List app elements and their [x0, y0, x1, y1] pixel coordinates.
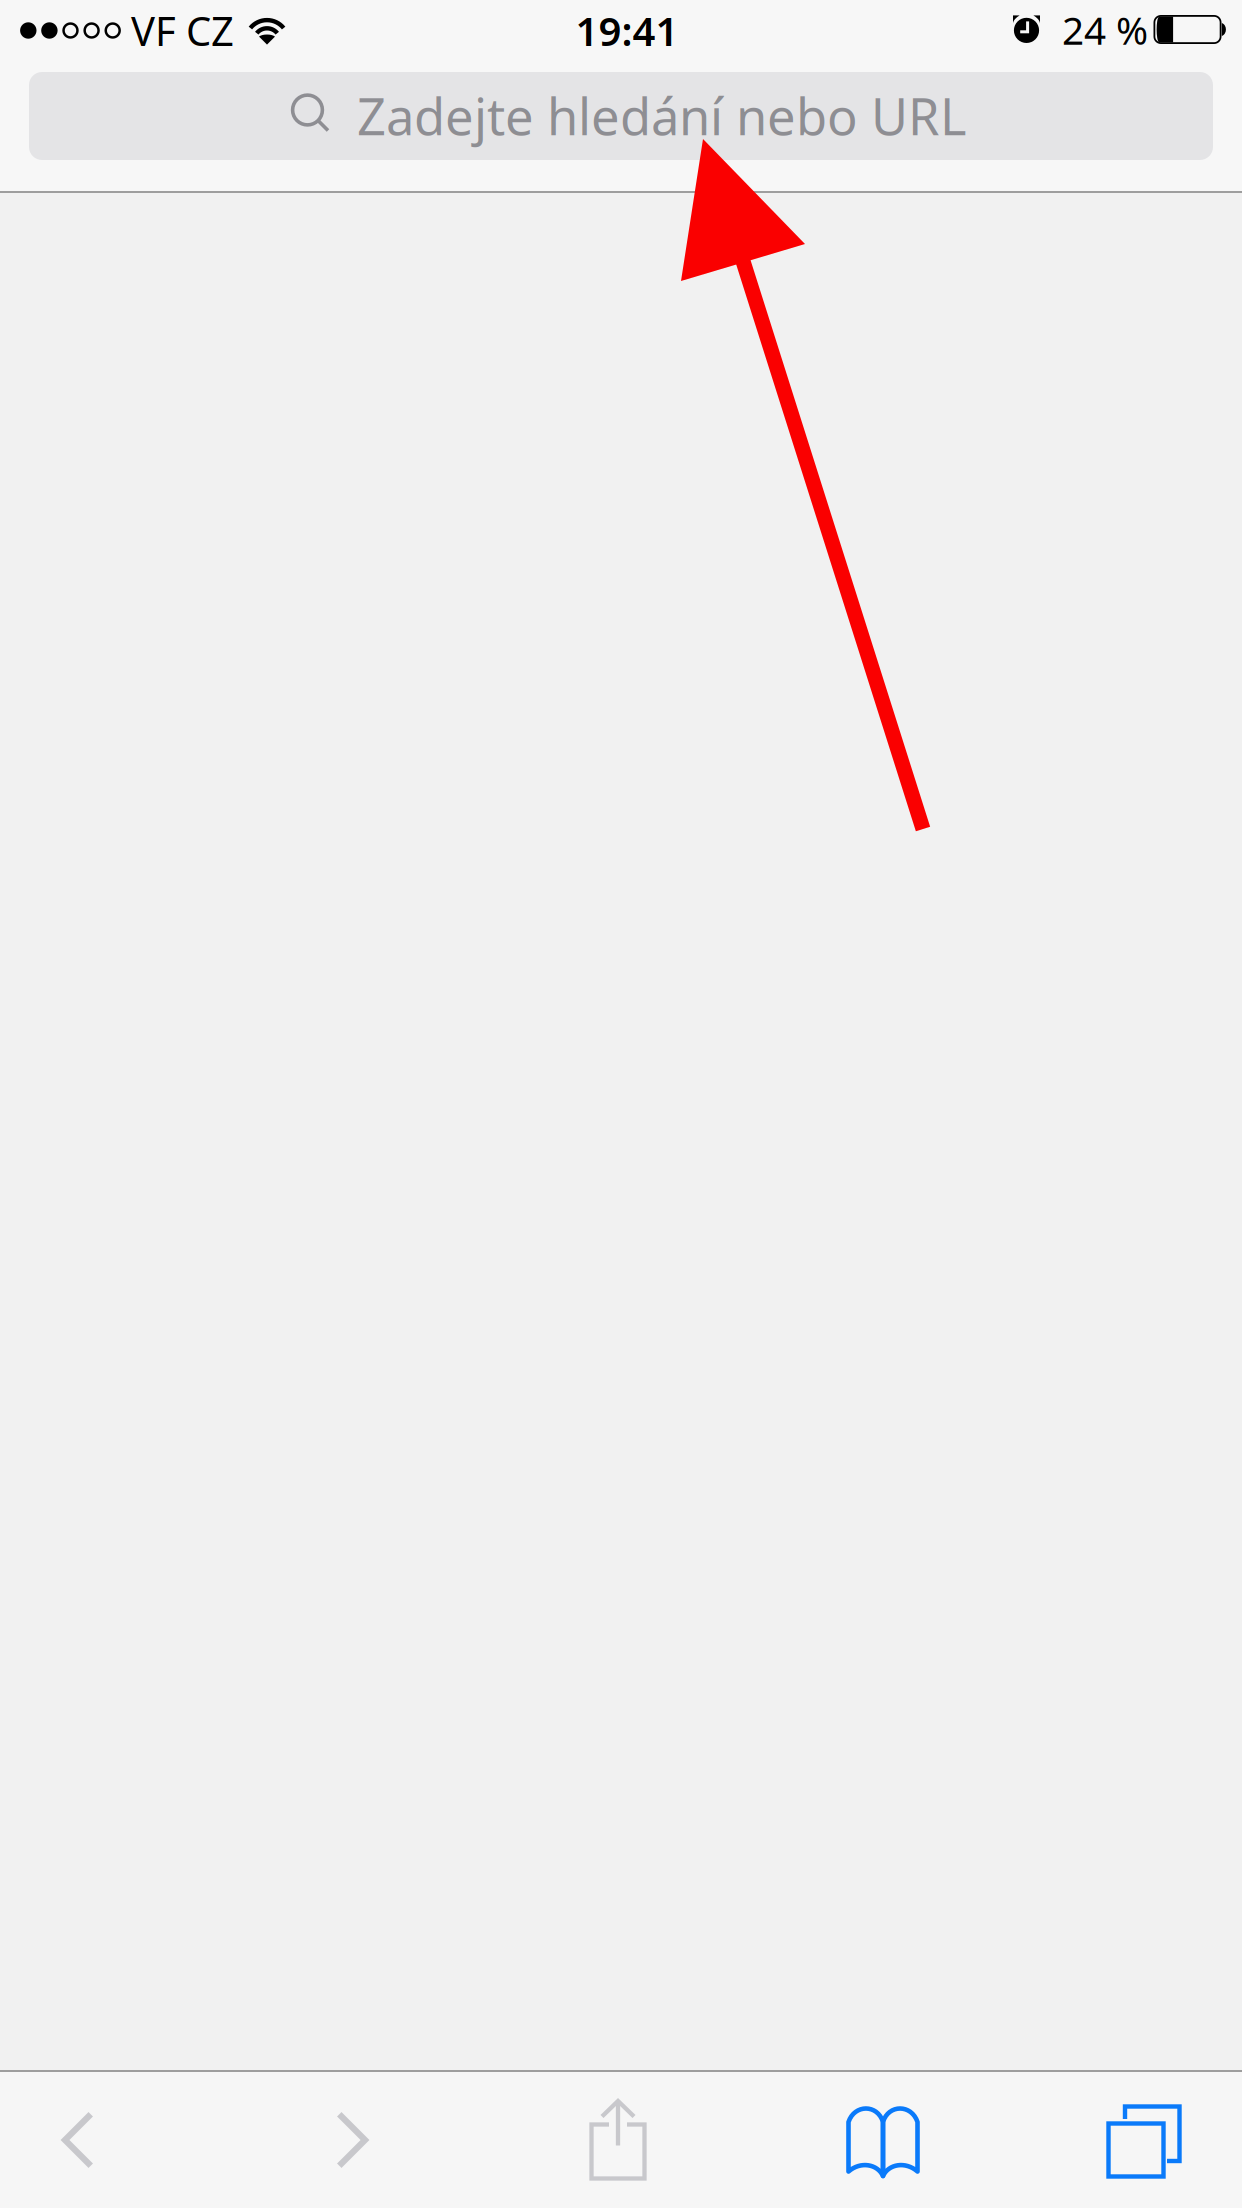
- button[interactable]: Bookmarks: [823, 2077, 943, 2208]
- staticText: Zadejte hledání nebo URL: [357, 82, 967, 149]
- button[interactable]: Forward: [293, 2072, 413, 2208]
- staticText: 24 %: [1062, 4, 1148, 55]
- staticText: 19:41: [575, 4, 678, 57]
- button[interactable]: Tabs: [1084, 2075, 1204, 2208]
- button[interactable]: Zadejte hledání nebo URL: [29, 72, 1213, 160]
- button[interactable]: Share: [558, 2072, 678, 2208]
- staticText: VF CZ: [131, 4, 234, 57]
- button[interactable]: Back: [17, 2072, 137, 2208]
